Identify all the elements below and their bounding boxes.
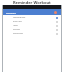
button[interactable]: Profile — [54, 11, 57, 14]
staticText: Reminder Workout — [13, 0, 51, 5]
staticText: Cycling — [13, 28, 20, 31]
staticText: Workout — [6, 11, 16, 14]
staticText: Morning Run — [13, 16, 26, 19]
button[interactable]: Stretching — [3, 32, 61, 36]
button[interactable]: Morning Run — [3, 16, 61, 20]
staticText: Push Ups — [13, 20, 22, 23]
button[interactable]: Push Ups — [3, 20, 61, 24]
button[interactable]: Cycling — [3, 28, 61, 32]
staticText: Stretching — [13, 32, 23, 35]
button[interactable]: Yoga — [3, 24, 61, 28]
staticText: Yoga — [13, 24, 18, 27]
